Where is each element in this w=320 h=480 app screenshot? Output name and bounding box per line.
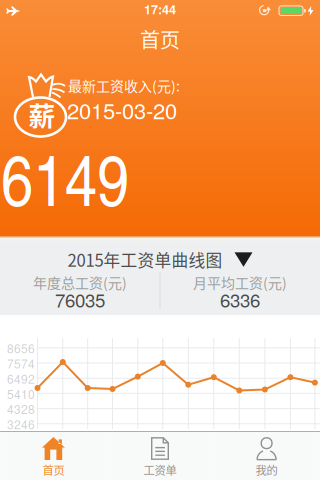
staticText: 4328 bbox=[7, 400, 35, 417]
staticText: 我的 bbox=[256, 461, 278, 478]
button[interactable]: 我的 bbox=[213, 432, 320, 480]
staticText: 6336 bbox=[220, 286, 260, 313]
staticText: 6492 bbox=[7, 370, 35, 387]
staticText: 月平均工资(元) bbox=[193, 272, 287, 292]
staticText: 6149 bbox=[1, 129, 129, 226]
staticText: 17:44 bbox=[144, 0, 176, 18]
button[interactable]: 2015年工资单曲线图 bbox=[0, 241, 320, 265]
staticText: 76035 bbox=[55, 286, 105, 313]
staticText: 年度总工资(元) bbox=[33, 272, 127, 292]
staticText: 3246 bbox=[7, 415, 35, 433]
staticText: 2015-03-20 bbox=[67, 94, 177, 125]
staticText: 工资单 bbox=[143, 461, 176, 478]
staticText: 首页 bbox=[140, 24, 180, 53]
staticText: 薪 bbox=[28, 95, 55, 134]
staticText: 最新工资收入(元): bbox=[68, 75, 180, 95]
staticText: 7574 bbox=[7, 355, 35, 372]
staticText: 5410 bbox=[7, 385, 35, 402]
button[interactable]: 工资单 bbox=[107, 432, 213, 480]
staticText: 首页 bbox=[42, 461, 64, 478]
button[interactable]: 首页 bbox=[0, 432, 107, 480]
staticText: 8656 bbox=[7, 339, 35, 357]
staticText: 2015年工资单曲线图 bbox=[67, 247, 222, 272]
